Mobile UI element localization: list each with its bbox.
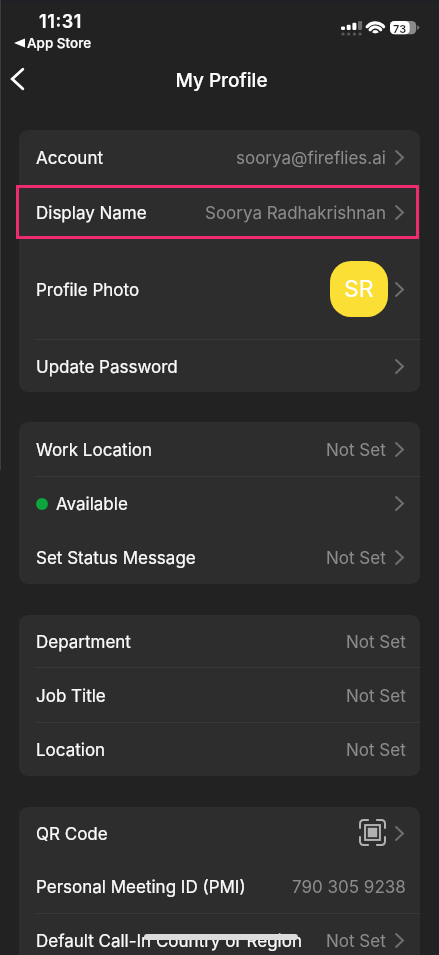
button[interactable]: QR Code <box>358 818 386 846</box>
button[interactable]: Update Password <box>19 340 420 392</box>
staticText: App Store <box>27 35 92 51</box>
button[interactable]: Display Name <box>19 185 420 239</box>
staticText: Update Password <box>36 357 178 378</box>
staticText: QR Code <box>36 824 108 845</box>
staticText: Location <box>36 740 106 761</box>
staticText: Profile Photo <box>36 280 140 301</box>
button[interactable]: Work Location <box>19 422 420 476</box>
staticText: Display Name <box>36 203 147 224</box>
staticText: Default Call-In Country or Region <box>36 931 302 952</box>
staticText: Set Status Message <box>36 548 196 569</box>
button[interactable]: Set Status Message <box>19 530 420 584</box>
button[interactable]: Back <box>0 58 38 100</box>
button[interactable]: QR Code <box>19 807 420 860</box>
staticText: SR <box>344 275 374 303</box>
staticText: My Profile <box>2 69 439 92</box>
staticText: Job Title <box>36 686 106 707</box>
staticText: Not Set <box>326 931 386 952</box>
button[interactable]: Personal Meeting ID (PMI) <box>19 860 420 913</box>
staticText: Not Set <box>326 548 386 569</box>
staticText: Account <box>36 148 104 169</box>
button[interactable]: Department <box>19 615 420 667</box>
button[interactable]: Profile Photo <box>19 239 420 339</box>
staticText: Personal Meeting ID (PMI) <box>36 877 246 898</box>
button[interactable]: Default Call-In Country or Region <box>19 914 420 955</box>
staticText: Department <box>36 632 131 653</box>
staticText: Available <box>56 494 128 515</box>
staticText: Not Set <box>346 686 406 707</box>
button[interactable]: Available <box>19 477 420 530</box>
staticText: Not Set <box>326 440 386 461</box>
button[interactable]: Account <box>19 130 420 185</box>
staticText: soorya@fireflies.ai <box>236 148 386 169</box>
staticText: 73 <box>393 22 407 35</box>
staticText: Not Set <box>346 740 406 761</box>
staticText: Soorya Radhakrishnan <box>205 203 386 224</box>
button[interactable]: Job Title <box>19 668 420 722</box>
staticText: Work Location <box>36 440 153 461</box>
staticText: Not Set <box>346 632 406 653</box>
button[interactable]: Location <box>19 723 420 776</box>
staticText: 11:31 <box>39 11 83 33</box>
staticText: 790 305 9238 <box>292 877 406 898</box>
